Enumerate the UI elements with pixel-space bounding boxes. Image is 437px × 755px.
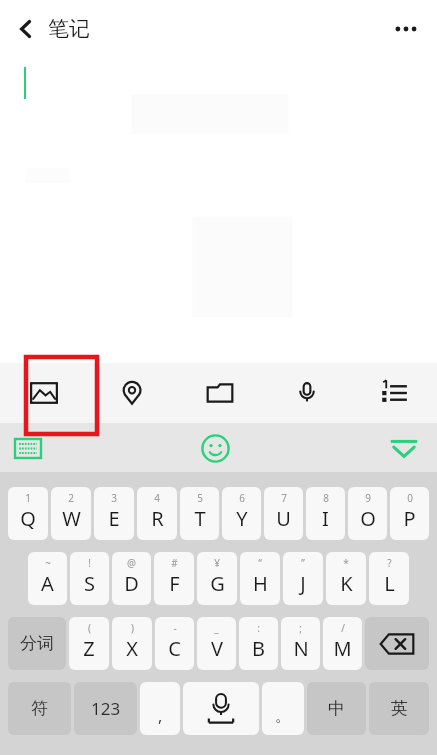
button[interactable]: ?	[369, 552, 409, 605]
button[interactable]: 2	[51, 487, 91, 540]
staticText: C	[168, 635, 181, 662]
staticText: D	[124, 570, 139, 597]
button[interactable]: !	[70, 552, 109, 605]
button[interactable]: @	[112, 552, 151, 605]
staticText: X	[126, 635, 138, 662]
staticText: Q	[20, 505, 36, 532]
staticText: I	[322, 505, 329, 532]
button[interactable]: Insert location	[88, 363, 176, 423]
button[interactable]: ,	[140, 682, 180, 735]
staticText: J	[300, 570, 306, 597]
staticText: !	[88, 556, 91, 570]
staticText: 123	[91, 697, 121, 720]
button[interactable]: Insert image	[0, 363, 88, 423]
button[interactable]: Back	[4, 7, 48, 51]
button[interactable]	[0, 58, 437, 363]
button[interactable]: *	[326, 552, 366, 605]
button[interactable]: Emoji	[193, 426, 237, 470]
button[interactable]: -	[155, 617, 194, 670]
staticText: (	[88, 621, 91, 635]
staticText: 中	[328, 698, 345, 719]
staticText: M	[333, 635, 352, 662]
staticText: Z	[83, 635, 95, 662]
button[interactable]: _	[197, 617, 236, 670]
staticText: ~	[45, 556, 51, 570]
staticText: 2	[68, 491, 74, 505]
staticText: O	[360, 505, 376, 532]
staticText: 7	[281, 491, 287, 505]
button[interactable]: 9	[348, 487, 387, 540]
staticText: 6	[239, 491, 245, 505]
staticText: R	[151, 505, 164, 532]
button[interactable]: “	[240, 552, 280, 605]
button[interactable]: 1	[8, 487, 48, 540]
button[interactable]: Insert file	[176, 363, 263, 423]
staticText: “	[258, 556, 262, 570]
button[interactable]: Backspace	[365, 617, 429, 670]
staticText: 。	[275, 706, 291, 726]
button[interactable]: 7	[264, 487, 303, 540]
staticText: Y	[236, 505, 248, 532]
button[interactable]: 5	[180, 487, 219, 540]
staticText: B	[252, 635, 265, 662]
staticText: 英	[391, 698, 408, 719]
button[interactable]: 0	[390, 487, 429, 540]
staticText: 3	[111, 491, 117, 505]
staticText: 9	[365, 491, 371, 505]
button[interactable]: Keyboard	[6, 426, 50, 470]
button[interactable]: 。	[262, 682, 304, 735]
staticText: ;	[299, 621, 302, 635]
button[interactable]: 123	[74, 682, 137, 735]
staticText: N	[293, 635, 309, 662]
staticText: /	[341, 621, 345, 635]
staticText: @	[127, 556, 136, 570]
button[interactable]: Space, voice input	[183, 682, 259, 735]
staticText: -	[173, 621, 177, 635]
staticText: K	[340, 570, 353, 597]
staticText: E	[108, 505, 120, 532]
staticText: 分词	[20, 633, 54, 654]
button[interactable]: /	[323, 617, 362, 670]
button[interactable]: Insert list	[350, 363, 437, 423]
button[interactable]: :	[239, 617, 278, 670]
staticText: F	[169, 570, 180, 597]
staticText: G	[210, 570, 225, 597]
staticText: #	[171, 556, 178, 570]
button[interactable]: ”	[283, 552, 323, 605]
button[interactable]: 3	[94, 487, 134, 540]
staticText: 0	[407, 491, 413, 505]
button[interactable]: 中	[307, 682, 366, 735]
button[interactable]: 符	[8, 682, 71, 735]
button[interactable]: ;	[281, 617, 320, 670]
button[interactable]: (	[69, 617, 109, 670]
staticText: 8	[323, 491, 329, 505]
staticText: A	[41, 570, 54, 597]
button[interactable]: 6	[222, 487, 261, 540]
button[interactable]: )	[112, 617, 152, 670]
staticText: ,	[158, 705, 163, 727]
button[interactable]: ¥	[197, 552, 237, 605]
staticText: 笔记	[48, 16, 90, 42]
staticText: L	[384, 570, 395, 597]
staticText: :	[257, 621, 260, 635]
button[interactable]: ~	[28, 552, 67, 605]
button[interactable]: #	[154, 552, 194, 605]
button[interactable]: 8	[306, 487, 345, 540]
staticText: 5	[197, 491, 203, 505]
button[interactable]: 分词	[8, 617, 66, 670]
staticText: W	[62, 505, 81, 532]
button[interactable]: Voice input	[263, 363, 350, 423]
staticText: ¥	[214, 556, 220, 570]
staticText: 符	[31, 698, 48, 719]
staticText: S	[84, 570, 95, 597]
staticText: T	[194, 505, 206, 532]
staticText: 1	[25, 491, 31, 505]
button[interactable]: 4	[137, 487, 177, 540]
staticText: ?	[387, 556, 392, 570]
staticText: H	[253, 570, 268, 597]
staticText: ”	[301, 556, 305, 570]
button[interactable]: More options	[383, 6, 429, 52]
button[interactable]: 英	[369, 682, 429, 735]
button[interactable]: Hide keyboard	[381, 425, 427, 471]
staticText: )	[131, 621, 134, 635]
